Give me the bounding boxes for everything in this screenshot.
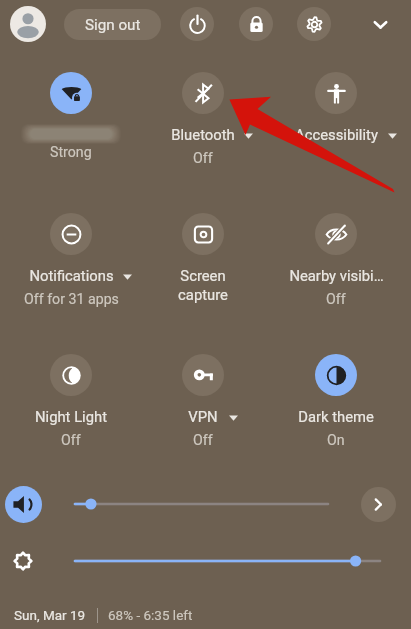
button[interactable]: Brightness xyxy=(5,543,40,578)
button[interactable]: Wi-Fi xyxy=(5,72,137,161)
staticText: Bluetooth xyxy=(171,126,235,143)
button[interactable]: Dark theme xyxy=(270,354,402,449)
staticText: VPN xyxy=(188,408,218,425)
button[interactable]: Nearby visibi… xyxy=(270,213,402,308)
staticText: Sign out xyxy=(85,16,141,34)
staticText: Off xyxy=(193,150,213,167)
button[interactable]: Lock xyxy=(239,7,273,41)
staticText: Off xyxy=(193,432,213,449)
button[interactable]: Bluetooth xyxy=(137,72,269,167)
button[interactable]: Sun, Mar 19 xyxy=(14,607,86,623)
staticText: Night Light xyxy=(35,408,107,425)
button[interactable]: Settings xyxy=(297,7,331,41)
button[interactable]: Audio settings xyxy=(361,487,396,522)
button[interactable]: Account xyxy=(10,6,46,42)
button[interactable]: Accessibility xyxy=(270,72,402,150)
button[interactable]: Volume xyxy=(5,486,42,523)
button[interactable]: 68% - 6:35 left xyxy=(108,607,193,623)
staticText: Off xyxy=(326,291,346,308)
staticText: Dark theme xyxy=(298,408,374,425)
staticText: Accessibility xyxy=(295,126,378,143)
staticText: Nearby visibi… xyxy=(289,267,384,284)
button[interactable]: VPN xyxy=(137,354,269,449)
staticText: Strong xyxy=(50,144,92,161)
button[interactable]: Power xyxy=(180,7,214,41)
staticText: Notifications xyxy=(29,267,114,284)
staticText: Screen capture xyxy=(178,267,228,304)
button[interactable]: Screen capture xyxy=(137,213,269,310)
button[interactable]: Sign out xyxy=(64,9,161,40)
button[interactable]: Collapse xyxy=(363,7,397,41)
staticText: Off for 31 apps xyxy=(24,291,119,308)
button[interactable]: Notifications xyxy=(5,213,137,308)
staticText: On xyxy=(327,432,345,449)
staticText: Off xyxy=(61,432,81,449)
button[interactable]: Night Light xyxy=(5,354,137,449)
